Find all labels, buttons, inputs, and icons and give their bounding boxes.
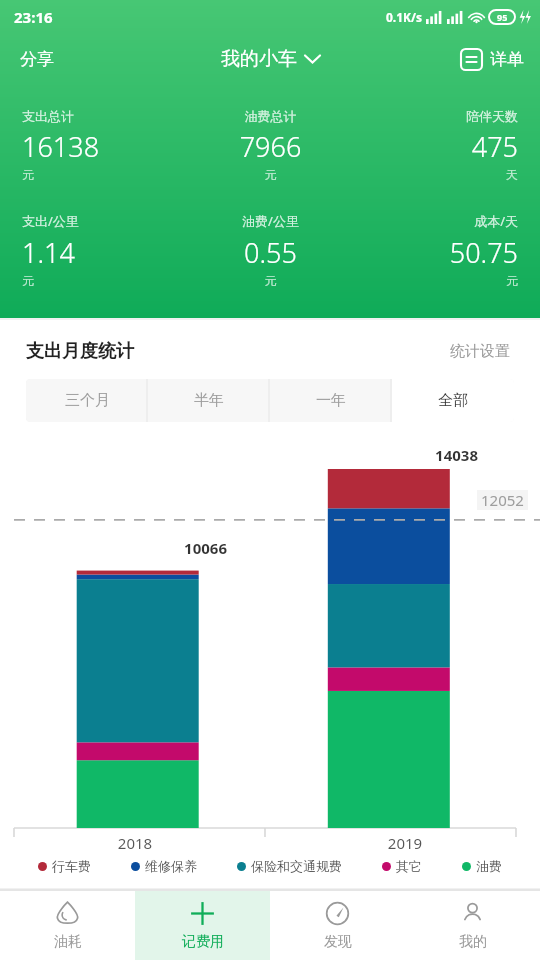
button[interactable]: 油耗 <box>0 891 135 960</box>
staticText: 元 <box>188 273 353 288</box>
staticText: 详单 <box>490 49 524 70</box>
staticText: 1.14 <box>22 234 188 271</box>
button[interactable]: 三个月 <box>26 379 148 422</box>
staticText: 保险和交通规费 <box>251 858 342 874</box>
staticText: 其它 <box>396 858 422 874</box>
button[interactable]: 我的 <box>405 891 540 960</box>
staticText: 475 <box>353 128 518 165</box>
staticText: 支出总计 <box>22 108 188 124</box>
staticText: 油费总计 <box>188 108 353 124</box>
staticText: 12052 <box>481 490 524 510</box>
staticText: 行车费 <box>52 858 91 874</box>
staticText: 分享 <box>20 49 54 70</box>
staticText: 发现 <box>324 933 352 951</box>
staticText: 元 <box>22 167 188 182</box>
staticText: 全部 <box>438 391 468 410</box>
staticText: 14038 <box>0 445 478 465</box>
staticText: 油费 <box>476 858 502 874</box>
staticText: 油费/公里 <box>188 212 353 230</box>
staticText: 7966 <box>188 128 353 165</box>
staticText: 油耗 <box>54 933 82 951</box>
staticText: 支出/公里 <box>22 212 188 230</box>
staticText: 陪伴天数 <box>353 108 518 124</box>
button[interactable]: 发现 <box>270 891 405 960</box>
staticText: 元 <box>22 273 188 288</box>
staticText: 记费用 <box>182 933 224 951</box>
staticText: 统计设置 <box>450 342 510 361</box>
staticText: 一年 <box>316 391 346 410</box>
staticText: 元 <box>353 273 518 288</box>
staticText: 0.55 <box>188 234 353 271</box>
button[interactable]: 半年 <box>148 379 270 422</box>
button[interactable]: 统计设置 <box>446 338 514 365</box>
button[interactable]: 详单 <box>445 41 540 78</box>
staticText: 支出月度统计 <box>26 340 134 363</box>
button[interactable]: 分享 <box>0 41 74 78</box>
staticText: 2018 <box>0 833 270 853</box>
staticText: 半年 <box>194 391 224 410</box>
staticText: 维修保养 <box>145 858 197 874</box>
staticText: 三个月 <box>65 391 110 410</box>
staticText: 0.1K/s <box>386 9 423 25</box>
staticText: 95 <box>497 11 508 23</box>
staticText: 我的 <box>459 933 487 951</box>
staticText: 50.75 <box>353 234 518 271</box>
staticText: 23:16 <box>14 7 53 27</box>
staticText: 2019 <box>270 833 540 853</box>
staticText: 我的小车 <box>221 47 297 71</box>
button[interactable]: 全部 <box>392 379 514 422</box>
button[interactable]: 我的小车 <box>213 39 328 79</box>
staticText: 天 <box>353 167 518 182</box>
staticText: 成本/天 <box>353 212 518 230</box>
button[interactable]: 一年 <box>270 379 392 422</box>
staticText: 元 <box>188 167 353 182</box>
button[interactable]: 记费用 <box>135 891 270 960</box>
staticText: 16138 <box>22 128 188 165</box>
staticText: 10066 <box>0 538 227 558</box>
